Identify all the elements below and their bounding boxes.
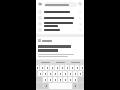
button[interactable] bbox=[37, 60, 53, 64]
button[interactable] bbox=[36, 37, 84, 59]
button[interactable]: Key bbox=[40, 65, 44, 70]
button[interactable]: Key bbox=[73, 77, 77, 82]
button[interactable]: Key bbox=[80, 65, 84, 70]
button[interactable]: Key bbox=[48, 71, 52, 76]
button[interactable]: Key bbox=[70, 65, 74, 70]
button[interactable]: Key bbox=[73, 83, 77, 89]
button[interactable]: Key bbox=[63, 71, 67, 76]
button[interactable]: Key bbox=[38, 71, 42, 76]
button[interactable]: Key bbox=[75, 65, 79, 70]
button[interactable] bbox=[36, 27, 84, 33]
button[interactable]: Key bbox=[45, 65, 49, 70]
button[interactable] bbox=[68, 60, 83, 64]
button[interactable] bbox=[53, 60, 68, 64]
button[interactable]: Key bbox=[43, 71, 47, 76]
button[interactable]: Key bbox=[58, 77, 62, 82]
button[interactable]: Key bbox=[44, 83, 48, 89]
button[interactable]: Key bbox=[58, 71, 62, 76]
button[interactable]: Key bbox=[68, 77, 72, 82]
button[interactable]: Key bbox=[53, 77, 57, 82]
button[interactable]: Key bbox=[78, 71, 82, 76]
button[interactable]: Key bbox=[68, 71, 72, 76]
button[interactable] bbox=[36, 21, 84, 27]
button[interactable]: Key bbox=[53, 71, 57, 76]
button[interactable]: Key bbox=[63, 77, 67, 82]
button[interactable]: Key bbox=[43, 77, 47, 82]
button[interactable]: Search bbox=[36, 0, 84, 8]
button[interactable] bbox=[36, 9, 84, 15]
button[interactable]: Key bbox=[36, 65, 39, 70]
button[interactable] bbox=[36, 15, 84, 21]
button[interactable]: Key bbox=[48, 77, 52, 82]
button[interactable]: Key bbox=[65, 65, 69, 70]
button[interactable]: Key bbox=[55, 65, 59, 70]
button[interactable]: Key bbox=[60, 65, 64, 70]
button[interactable]: Search bbox=[78, 2, 82, 6]
button[interactable]: Key bbox=[50, 65, 54, 70]
button[interactable]: Key bbox=[73, 71, 77, 76]
